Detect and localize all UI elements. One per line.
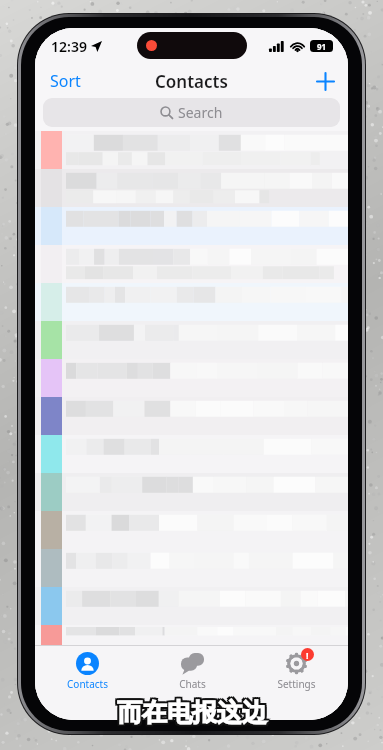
staticText: Settings xyxy=(277,677,316,691)
staticText: Chats xyxy=(179,677,206,691)
button[interactable] xyxy=(35,473,348,511)
button[interactable]: Search xyxy=(43,98,340,127)
button[interactable] xyxy=(35,131,348,169)
staticText: 而在电报这边 xyxy=(115,697,265,728)
staticText: 而在电报这边 xyxy=(117,695,267,726)
button[interactable] xyxy=(35,511,348,549)
staticText: 而在电报这边 xyxy=(117,699,267,730)
button[interactable] xyxy=(35,359,348,397)
staticText: 而在电报这边 xyxy=(115,699,265,730)
button[interactable]: Sort xyxy=(35,65,96,97)
button[interactable]: Settings xyxy=(244,646,348,698)
staticText: 91 xyxy=(317,41,327,52)
button[interactable] xyxy=(35,321,348,359)
staticText: 12:39 xyxy=(51,37,87,56)
staticText: 而在电报这边 xyxy=(117,697,267,728)
button[interactable] xyxy=(35,397,348,435)
button[interactable] xyxy=(35,245,348,283)
staticText: 而在电报这边 xyxy=(119,699,269,730)
button[interactable]: Contacts xyxy=(35,646,140,698)
button[interactable] xyxy=(35,549,348,587)
staticText: ! xyxy=(306,649,309,661)
button[interactable] xyxy=(35,587,348,625)
button[interactable]: Chats xyxy=(140,646,244,698)
button[interactable] xyxy=(35,435,348,473)
button[interactable] xyxy=(35,207,348,245)
button[interactable] xyxy=(35,283,348,321)
other: Contacts xyxy=(76,652,99,675)
staticText: 而在电报这边 xyxy=(119,697,269,728)
button[interactable]: Add contact xyxy=(303,68,348,95)
button[interactable] xyxy=(35,169,348,207)
staticText: Contacts xyxy=(67,677,108,691)
staticText: 而在电报这边 xyxy=(115,695,265,726)
staticText: Search xyxy=(178,103,223,122)
button[interactable] xyxy=(35,625,348,645)
other: Chats xyxy=(181,652,204,675)
staticText: Contacts xyxy=(155,70,228,93)
staticText: 而在电报这边 xyxy=(119,695,269,726)
other: Settings xyxy=(285,652,308,675)
staticText: Sort xyxy=(50,70,81,92)
